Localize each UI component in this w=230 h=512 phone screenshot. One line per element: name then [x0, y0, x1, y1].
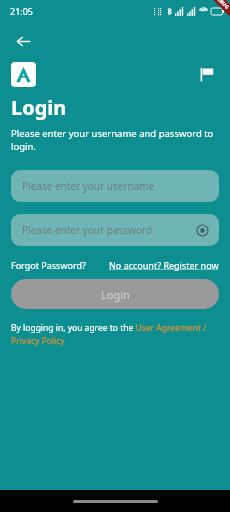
- staticText: By logging in, you agree to the User Agr…: [11, 322, 219, 347]
- button[interactable]: App logo: [11, 62, 36, 87]
- button[interactable]: By logging in, you agree to the User Agr…: [11, 322, 219, 347]
- button[interactable]: Please enter your username: [11, 170, 219, 202]
- button[interactable]: Show password: [193, 221, 211, 239]
- button[interactable]: Forgot Password?: [11, 259, 86, 271]
- staticText: Please enter your username and password …: [11, 127, 230, 153]
- staticText: 21:05: [10, 5, 34, 17]
- staticText: Forgot Password?: [11, 259, 86, 271]
- staticText: Please enter your password: [22, 223, 153, 237]
- staticText: No account? Register now: [109, 259, 219, 271]
- staticText: Login: [101, 287, 130, 302]
- button[interactable]: Login: [11, 279, 219, 309]
- button[interactable]: Language: [193, 61, 219, 87]
- staticText: Login: [11, 94, 67, 121]
- button[interactable]: Please enter your password: [11, 214, 219, 246]
- button[interactable]: Back: [6, 24, 40, 58]
- staticText: DEBUG: [213, 0, 230, 11]
- button[interactable]: No account? Register now: [109, 259, 219, 271]
- staticText: Please enter your username: [22, 179, 155, 193]
